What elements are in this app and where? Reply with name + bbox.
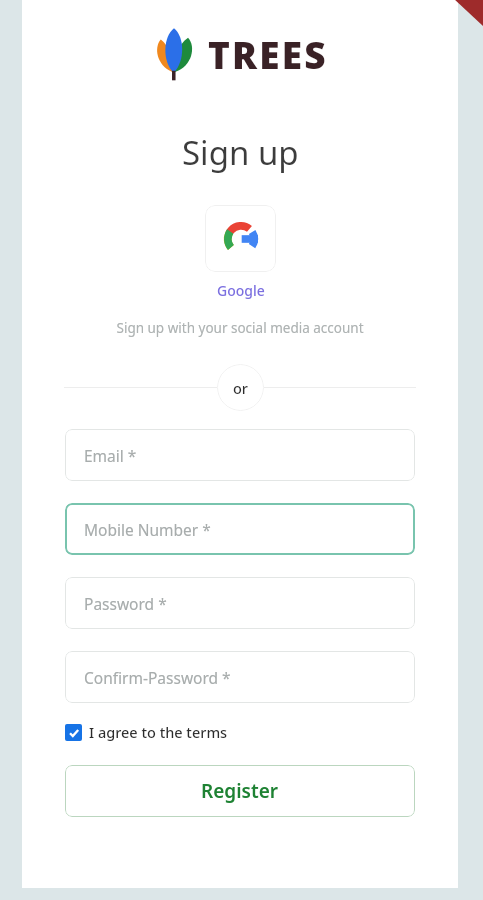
staticText: Register (201, 778, 279, 804)
staticText: Mobile Number * (84, 519, 211, 540)
button[interactable]: Sign up with Google (205, 205, 276, 272)
button[interactable]: Trees logo (152, 26, 328, 82)
button[interactable]: Email * (65, 429, 415, 481)
staticText: I agree to the terms (89, 722, 228, 742)
staticText: Sign up with your social media account (116, 319, 364, 337)
staticText: Sign up (182, 130, 299, 175)
staticText: Password * (84, 593, 167, 614)
button[interactable]: Mobile Number * (65, 503, 415, 555)
other: Google (224, 222, 258, 256)
button[interactable]: Password * (65, 577, 415, 629)
other: Trees logo (152, 26, 196, 82)
staticText: Email * (84, 445, 137, 466)
button[interactable]: I agree to the terms (65, 722, 415, 742)
staticText: or (233, 378, 248, 398)
button[interactable]: Register (65, 765, 415, 817)
button[interactable]: Google (217, 281, 265, 300)
staticText: TREES (208, 29, 328, 79)
button[interactable]: Confirm-Password * (65, 651, 415, 703)
staticText: Confirm-Password * (84, 667, 231, 688)
